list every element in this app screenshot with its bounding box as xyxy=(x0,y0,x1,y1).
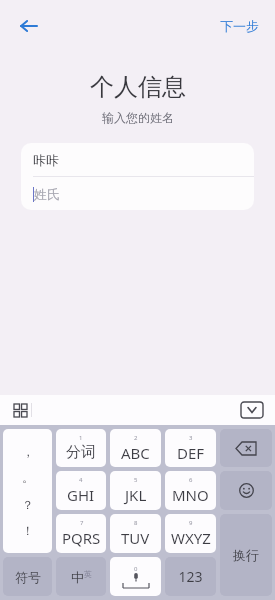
button[interactable]: 3 xyxy=(165,429,216,467)
button[interactable]: ， xyxy=(3,429,52,553)
button[interactable]: 换行 xyxy=(220,514,272,596)
staticText: 中 xyxy=(71,569,84,585)
staticText: PQRS xyxy=(62,528,101,548)
staticText: 咔咔 xyxy=(33,152,59,168)
staticText: 7 xyxy=(80,519,84,527)
button[interactable]: Hide keyboard xyxy=(239,401,265,419)
staticText: 9 xyxy=(189,519,193,527)
staticText: 6 xyxy=(189,476,193,484)
staticText: ！ xyxy=(22,523,34,538)
staticText: 2 xyxy=(134,434,138,442)
staticText: MNO xyxy=(172,485,209,505)
button[interactable]: 姓氏 xyxy=(21,177,254,210)
staticText: 换行 xyxy=(233,547,259,563)
button[interactable]: 下一步 xyxy=(216,14,263,38)
staticText: JKL xyxy=(125,485,147,505)
button[interactable]: 5 xyxy=(110,471,161,510)
staticText: 3 xyxy=(189,434,193,442)
staticText: TUV xyxy=(121,528,150,548)
button[interactable]: Back xyxy=(10,8,46,44)
staticText: ABC xyxy=(121,443,150,463)
button[interactable]: 1 xyxy=(56,429,106,467)
staticText: WXYZ xyxy=(171,528,211,548)
button[interactable]: 9 xyxy=(165,514,216,553)
staticText: 下一步 xyxy=(220,18,259,34)
staticText: 姓氏 xyxy=(34,186,60,202)
button[interactable]: 123 xyxy=(165,557,216,596)
staticText: 1 xyxy=(79,434,83,442)
button[interactable]: 符号 xyxy=(3,557,52,596)
staticText: 8 xyxy=(134,519,138,527)
staticText: 5 xyxy=(134,476,138,484)
button[interactable]: Space, voice input xyxy=(110,557,161,596)
button[interactable]: Keyboard panels xyxy=(9,399,31,421)
staticText: 分词 xyxy=(66,443,96,462)
staticText: 。 xyxy=(22,470,34,485)
button[interactable]: Emoji xyxy=(220,471,272,510)
button[interactable]: 中 xyxy=(56,557,106,596)
button[interactable]: 咔咔 xyxy=(21,143,254,176)
button[interactable]: 4 xyxy=(56,471,106,510)
staticText: ， xyxy=(22,444,34,459)
button[interactable]: 7 xyxy=(56,514,106,553)
staticText: 123 xyxy=(178,567,203,586)
staticText: GHI xyxy=(67,485,95,505)
staticText: DEF xyxy=(177,443,205,463)
staticText: 符号 xyxy=(15,569,41,585)
staticText: 英 xyxy=(84,569,92,579)
button[interactable]: 2 xyxy=(110,429,161,467)
staticText: 0 xyxy=(134,565,138,573)
staticText: ？ xyxy=(22,497,34,512)
staticText: 4 xyxy=(79,476,83,484)
staticText: 输入您的姓名 xyxy=(102,110,174,125)
button[interactable]: 6 xyxy=(165,471,216,510)
staticText: 个人信息 xyxy=(90,72,186,102)
button[interactable]: 8 xyxy=(110,514,161,553)
button[interactable]: Backspace xyxy=(220,429,272,467)
